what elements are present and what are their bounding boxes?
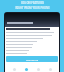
button[interactable]: CONTINUE [6,56,58,62]
staticText: BIG ON FEATURES [21,1,44,5]
button[interactable]: Tab 2 [35,67,41,72]
staticText: CONTINUE [26,58,39,61]
button[interactable]: Tab 1 [23,67,29,72]
button[interactable]: Tab 0 [11,67,17,72]
button[interactable]: Tab 3 [47,67,53,72]
staticText: RIGHT FROM YOUR PHONE [15,6,50,10]
